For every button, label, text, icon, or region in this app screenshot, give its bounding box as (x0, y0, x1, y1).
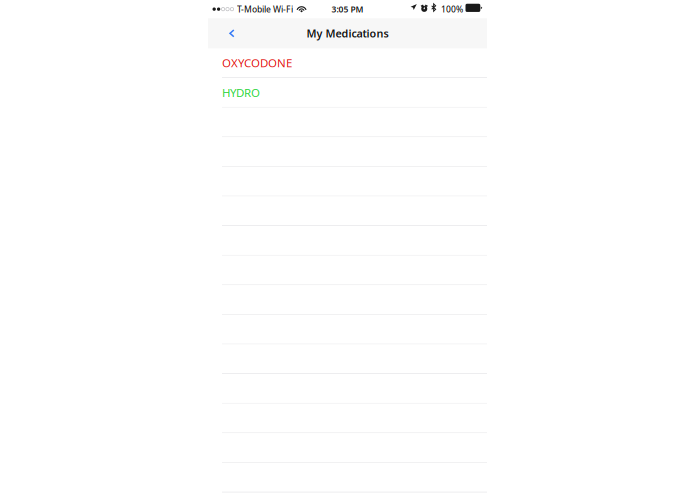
button[interactable]: OXYCODONE (208, 48, 487, 78)
staticText: 3:05 PM (331, 3, 363, 15)
staticText: My Medications (306, 26, 388, 41)
staticText: 100% (441, 3, 463, 15)
staticText: T-Mobile Wi-Fi (237, 3, 293, 15)
staticText: OXYCODONE (222, 55, 292, 71)
staticText: HYDRO (222, 85, 260, 100)
button[interactable]: HYDRO (208, 78, 487, 108)
button[interactable]: Back (208, 18, 245, 48)
